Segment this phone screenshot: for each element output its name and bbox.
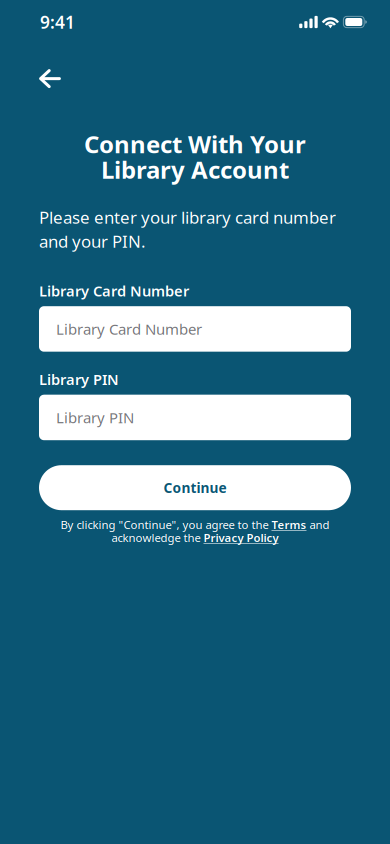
staticText: Privacy Policy: [203, 530, 278, 545]
button[interactable]: Library Card Number: [39, 306, 351, 352]
staticText: Connect With Your: [84, 128, 306, 160]
button[interactable]: Library PIN: [39, 395, 351, 440]
staticText: 9:41: [40, 10, 75, 34]
staticText: Terms: [271, 517, 306, 532]
staticText: Library Account: [101, 153, 289, 186]
staticText: Library Card Number: [39, 281, 189, 301]
staticText: Please enter your library card number: [39, 206, 336, 229]
button[interactable]: Back: [0, 44, 77, 104]
staticText: Library PIN: [39, 369, 119, 389]
button[interactable]: Terms: [271, 517, 306, 532]
staticText: acknowledge the: [111, 530, 203, 545]
staticText: Library PIN: [56, 407, 134, 428]
staticText: Continue: [163, 478, 226, 497]
staticText: By clicking "Continue", you agree to the: [60, 517, 271, 532]
staticText: Library Card Number: [56, 319, 202, 339]
staticText: and your PIN.: [39, 230, 146, 253]
button[interactable]: Continue: [39, 465, 351, 510]
button[interactable]: Privacy Policy: [203, 530, 278, 545]
staticText: and: [306, 517, 329, 532]
